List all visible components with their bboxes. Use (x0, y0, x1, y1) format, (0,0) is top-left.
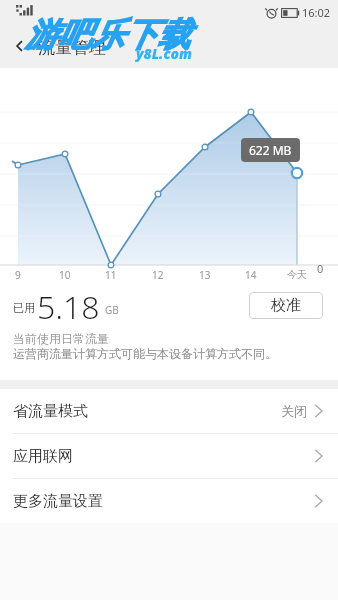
button[interactable]: 更多流量设置 (0, 479, 338, 523)
staticText: 校准 (271, 296, 301, 315)
staticText: 更多流量设置 (13, 492, 103, 511)
staticText: GB (105, 303, 119, 317)
staticText: 14 (245, 268, 257, 282)
staticText: 12 (152, 268, 164, 282)
staticText: 流量管理 (38, 37, 106, 58)
staticText: 运营商流量计算方式可能与本设备计算方式不同。 (13, 346, 277, 361)
staticText: 11 (105, 268, 117, 282)
button[interactable]: 应用联网 (0, 434, 338, 478)
staticText: 13 (199, 268, 211, 282)
staticText: 当前使用日常流量 (13, 331, 109, 346)
staticText: 0 (317, 261, 324, 276)
staticText: 622 MB (249, 142, 292, 158)
staticText: 省流量模式 (13, 402, 88, 421)
staticText: 游吧乐下载 (25, 14, 190, 56)
staticText: y8L.com (136, 44, 192, 63)
staticText: 10 (59, 268, 71, 282)
staticText: 16:02 (302, 5, 331, 20)
staticText: 今天 (287, 268, 307, 281)
staticText: 5.18 (37, 285, 100, 329)
button[interactable]: 校准 (249, 292, 323, 319)
staticText: 9 (15, 268, 21, 282)
staticText: 应用联网 (13, 447, 73, 466)
staticText: 关闭 (281, 403, 307, 419)
button[interactable]: 省流量模式 (0, 389, 338, 433)
staticText: 已用 (13, 301, 35, 315)
button[interactable]: Back (0, 24, 40, 68)
